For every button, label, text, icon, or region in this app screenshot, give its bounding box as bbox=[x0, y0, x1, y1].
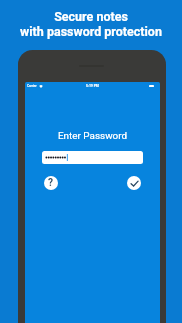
button[interactable]: Confirm bbox=[127, 176, 141, 190]
staticText: Enter Password bbox=[58, 130, 128, 142]
staticText: Secure notes bbox=[54, 9, 128, 24]
staticText: ? bbox=[48, 177, 54, 189]
staticText: with password protection bbox=[20, 24, 162, 39]
staticText: Carrier bbox=[27, 84, 37, 88]
button[interactable] bbox=[42, 151, 143, 164]
button[interactable]: Help bbox=[44, 176, 58, 190]
staticText: 5:19 PM bbox=[86, 84, 99, 88]
